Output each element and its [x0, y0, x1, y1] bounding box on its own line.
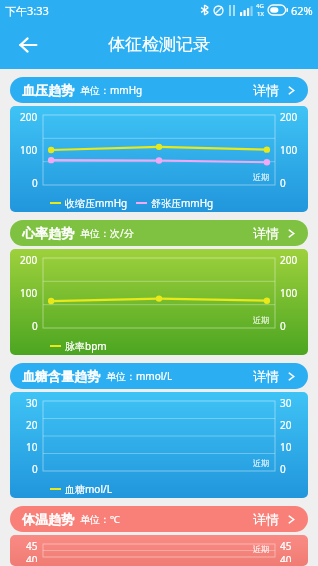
staticText: 30 [26, 396, 38, 410]
staticText: 0 [32, 319, 38, 333]
staticText: 血糖含量趋势 [22, 368, 100, 384]
staticText: 详情 [253, 511, 279, 527]
staticText: 近期 [253, 458, 269, 468]
staticText: 40 [26, 553, 38, 562]
staticText: 近期 [253, 172, 269, 182]
staticText: 0 [32, 462, 38, 476]
staticText: 200 [20, 253, 38, 267]
staticText: 体征检测记录 [108, 34, 210, 55]
button[interactable]: 200 [10, 249, 308, 355]
staticText: 单位：℃ [80, 512, 120, 526]
staticText: 体温趋势 [22, 511, 74, 527]
button[interactable]: Back [8, 25, 48, 65]
staticText: 40 [280, 553, 292, 562]
staticText: 详情 [253, 368, 279, 384]
button[interactable]: 200 [10, 106, 308, 212]
staticText: 详情 [253, 225, 279, 241]
staticText: 62% [291, 3, 313, 18]
staticText: 20 [26, 418, 38, 432]
staticText: 血压趋势 [22, 82, 74, 98]
staticText: 详情 [253, 82, 279, 98]
staticText: 血糖mol/L [65, 482, 112, 496]
staticText: 100 [20, 143, 38, 157]
staticText: 舒张压mmHg [151, 196, 214, 210]
button[interactable]: 45 [10, 535, 308, 566]
staticText: 100 [280, 143, 298, 157]
staticText: 近期 [253, 315, 269, 325]
staticText: 单位：mmol/L [106, 369, 173, 383]
button[interactable]: 血糖含量趋势 [10, 363, 308, 389]
staticText: 45 [26, 539, 38, 553]
staticText: 0 [32, 176, 38, 190]
staticText: 4G [256, 2, 264, 10]
staticText: 10 [280, 440, 292, 454]
button[interactable]: 体温趋势 [10, 506, 308, 532]
staticText: 近期 [253, 544, 269, 554]
staticText: 单位：mmHg [80, 83, 143, 97]
button[interactable]: 血压趋势 [10, 77, 308, 103]
staticText: 30 [280, 396, 292, 410]
staticText: 心率趋势 [22, 225, 74, 241]
staticText: 45 [280, 539, 292, 553]
staticText: 200 [280, 110, 298, 124]
staticText: 20 [280, 418, 292, 432]
staticText: 0 [280, 319, 286, 333]
staticText: 200 [20, 110, 38, 124]
staticText: 100 [280, 286, 298, 300]
staticText: 脉率bpm [65, 339, 107, 353]
staticText: 单位：次/分 [80, 226, 134, 240]
staticText: 10 [26, 440, 38, 454]
staticText: 收缩压mmHg [65, 196, 128, 210]
staticText: 0 [280, 176, 286, 190]
button[interactable]: 心率趋势 [10, 220, 308, 246]
staticText: 100 [20, 286, 38, 300]
staticText: 200 [280, 253, 298, 267]
staticText: 1X [257, 10, 264, 18]
staticText: 0 [280, 462, 286, 476]
staticText: 下午3:33 [5, 3, 49, 18]
button[interactable]: 30 [10, 392, 308, 498]
